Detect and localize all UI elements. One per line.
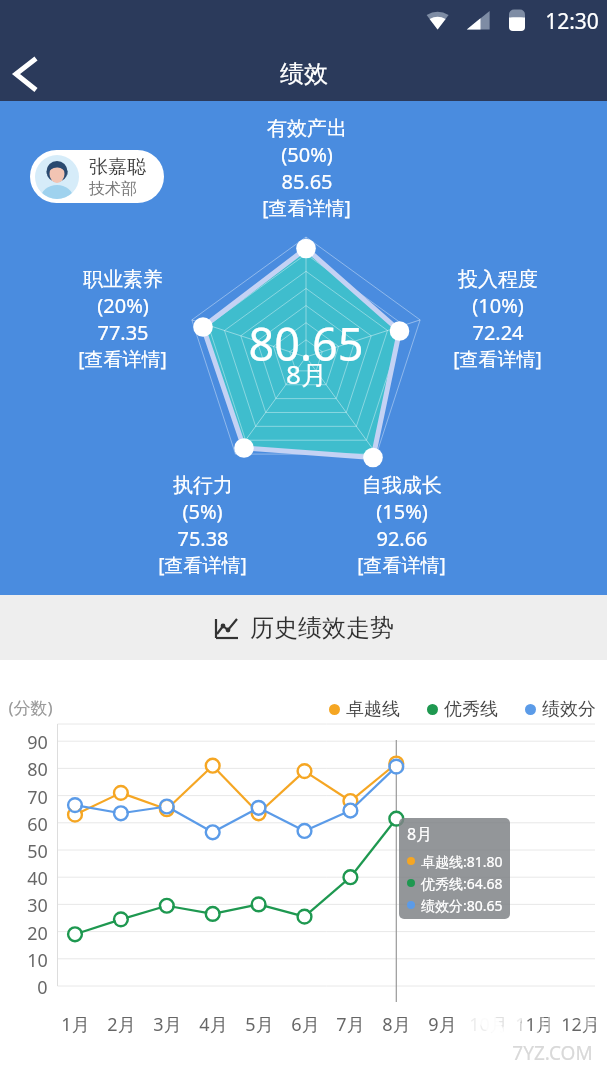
staticText: 技术部 — [89, 179, 137, 199]
staticText: [查看详情] — [262, 195, 351, 221]
staticText: 绩效分 — [542, 698, 596, 721]
staticText: 绩效 — [280, 59, 328, 89]
staticText: (分数) — [8, 696, 53, 719]
staticText: 历史绩效走势 — [250, 613, 394, 643]
staticText: 80 — [27, 757, 48, 782]
staticText: 10 — [27, 948, 48, 973]
staticText: 30 — [27, 893, 48, 918]
button[interactable] — [427, 704, 438, 715]
staticText: 5月 — [245, 1012, 274, 1037]
staticText: 4月 — [199, 1012, 228, 1037]
staticText: 7YZ.COM — [512, 1040, 593, 1066]
staticText: 3月 — [153, 1012, 182, 1037]
staticText: 12月 — [561, 1012, 600, 1037]
staticText: 卓越线:81.80 — [421, 852, 503, 871]
staticText: 绩效分:80.65 — [421, 896, 503, 915]
staticText: 投入程度 — [458, 267, 538, 292]
staticText: 8月 — [382, 1012, 411, 1037]
staticText: 7月 — [336, 1012, 365, 1037]
staticText: 77.35 — [97, 319, 149, 346]
staticText: 有效产出 — [267, 116, 347, 141]
staticText: 92.66 — [376, 525, 428, 552]
staticText: 12:30 — [545, 7, 599, 36]
staticText: [查看详情] — [78, 346, 167, 372]
staticText: (20%) — [97, 292, 149, 319]
staticText: 2月 — [107, 1012, 136, 1037]
staticText: 60 — [27, 812, 48, 837]
button[interactable] — [525, 704, 536, 715]
staticText: [查看详情] — [453, 346, 542, 372]
button[interactable]: 自我成长 — [301, 473, 501, 578]
staticText: 75.38 — [177, 525, 229, 552]
staticText: (15%) — [376, 498, 428, 525]
staticText: 1月 — [61, 1012, 90, 1037]
staticText: (50%) — [281, 141, 333, 168]
staticText: 8月 — [286, 356, 327, 392]
staticText: 72.24 — [472, 319, 524, 346]
staticText: 80.65 — [248, 313, 364, 374]
staticText: 优秀线 — [444, 698, 498, 721]
staticText: 执行力 — [173, 473, 233, 498]
staticText: 10月 — [469, 1012, 508, 1037]
staticText: 40 — [27, 866, 48, 891]
staticText: 6月 — [291, 1012, 320, 1037]
staticText: [查看详情] — [357, 552, 446, 578]
button[interactable]: 执行力 — [102, 473, 302, 578]
staticText: (5%) — [182, 498, 223, 525]
button[interactable] — [329, 704, 340, 715]
staticText: 90 — [27, 730, 48, 755]
staticText: 9月 — [428, 1012, 457, 1037]
staticText: 20 — [27, 921, 48, 946]
staticText: [查看详情] — [158, 552, 247, 578]
button[interactable]: 投入程度 — [397, 267, 597, 372]
staticText: 职业素养 — [83, 267, 163, 292]
staticText: 卓越线 — [346, 698, 400, 721]
staticText: 自我成长 — [362, 473, 442, 498]
staticText: 85.65 — [281, 168, 333, 195]
staticText: 优秀线:64.68 — [421, 874, 503, 893]
staticText: 70 — [27, 785, 48, 810]
staticText: (10%) — [472, 292, 524, 319]
staticText: 0 — [37, 975, 48, 1000]
button[interactable]: 张嘉聪 — [35, 150, 146, 203]
button[interactable]: 职业素养 — [22, 267, 222, 372]
staticText: 8月 — [407, 823, 433, 845]
staticText: 11月 — [515, 1012, 554, 1037]
button[interactable]: 有效产出 — [206, 116, 406, 221]
staticText: 张嘉聪 — [89, 155, 146, 179]
button[interactable] — [0, 40, 60, 100]
staticText: 50 — [27, 839, 48, 864]
staticText: 七叶子 — [508, 1002, 604, 1042]
